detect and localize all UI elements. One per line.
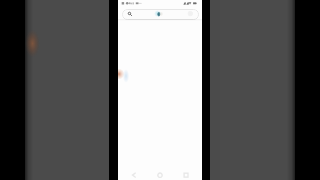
- button[interactable]: Back: [128, 169, 140, 180]
- button[interactable]: Home: [154, 169, 166, 180]
- button[interactable]: Recents: [180, 169, 192, 180]
- button[interactable]: Search: [122, 9, 199, 20]
